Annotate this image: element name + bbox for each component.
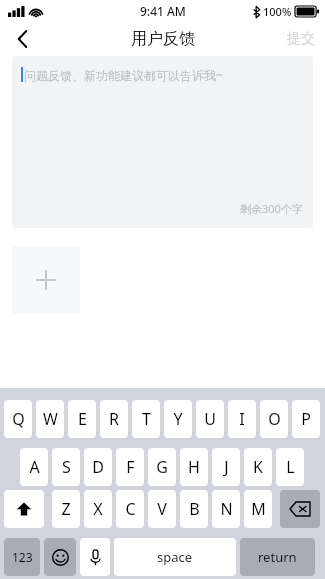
button[interactable]: L <box>276 448 304 486</box>
staticText: N <box>220 498 233 520</box>
button[interactable]: A <box>20 448 48 486</box>
button[interactable]: R <box>100 400 128 438</box>
staticText: V <box>157 498 167 520</box>
button[interactable]: N <box>212 490 240 528</box>
staticText: G <box>156 456 168 478</box>
staticText: M <box>251 498 266 520</box>
staticText: K <box>253 456 263 478</box>
button[interactable]: return <box>240 538 315 576</box>
button[interactable]: C <box>116 490 144 528</box>
staticText: W <box>43 408 58 430</box>
staticText: 100% <box>263 4 292 19</box>
staticText: J <box>224 456 229 478</box>
button[interactable]: G <box>148 448 176 486</box>
staticText: 剩余300个字 <box>240 201 303 216</box>
button[interactable]: V <box>148 490 176 528</box>
button[interactable]: T <box>132 400 160 438</box>
button[interactable]: O <box>260 400 288 438</box>
button[interactable]: F <box>116 448 144 486</box>
button[interactable]: Q <box>4 400 32 438</box>
button[interactable]: Shift <box>4 490 44 528</box>
staticText: D <box>92 456 104 478</box>
staticText: return <box>258 548 297 566</box>
button[interactable]: 提交 <box>287 30 315 48</box>
button[interactable]: Z <box>52 490 80 528</box>
staticText: 9:41 AM <box>140 3 186 19</box>
button[interactable]: E <box>68 400 96 438</box>
button[interactable]: K <box>244 448 272 486</box>
button[interactable]: M <box>244 490 272 528</box>
staticText: H <box>188 456 200 478</box>
button[interactable]: space <box>114 538 236 576</box>
staticText: F <box>126 456 135 478</box>
button[interactable]: Y <box>164 400 192 438</box>
button[interactable]: J <box>212 448 240 486</box>
button[interactable]: I <box>228 400 256 438</box>
button[interactable]: Add photo <box>12 246 80 314</box>
staticText: Q <box>12 408 25 430</box>
button[interactable]: Backspace <box>280 490 320 528</box>
button[interactable]: X <box>84 490 112 528</box>
staticText: U <box>204 408 216 430</box>
staticText: T <box>142 408 151 430</box>
staticText: 提交 <box>287 30 315 48</box>
staticText: E <box>78 408 87 430</box>
staticText: C <box>125 498 136 520</box>
staticText: Z <box>61 498 71 520</box>
staticText: X <box>93 498 103 520</box>
button[interactable]: H <box>180 448 208 486</box>
button[interactable]: Voice input <box>80 538 110 576</box>
button[interactable]: U <box>196 400 224 438</box>
staticText: 123 <box>12 549 33 565</box>
staticText: A <box>29 456 40 478</box>
staticText: L <box>286 456 295 478</box>
staticText: Y <box>173 408 183 430</box>
button[interactable]: Back <box>0 22 44 56</box>
button[interactable]: W <box>36 400 64 438</box>
staticText: I <box>239 408 245 430</box>
staticText: space <box>157 548 193 566</box>
staticText: P <box>301 408 311 430</box>
button[interactable]: 问题反馈、新功能建议都可以告诉我~ <box>12 56 313 228</box>
button[interactable]: S <box>52 448 80 486</box>
staticText: B <box>189 498 200 520</box>
staticText: R <box>109 408 119 430</box>
staticText: 用户反馈 <box>131 29 195 49</box>
button[interactable]: P <box>292 400 320 438</box>
button[interactable]: 123 <box>4 538 40 576</box>
button[interactable]: B <box>180 490 208 528</box>
staticText: O <box>268 408 281 430</box>
staticText: S <box>62 456 71 478</box>
button[interactable]: Emoji <box>44 538 76 576</box>
staticText: 问题反馈、新功能建议都可以告诉我~ <box>24 67 223 83</box>
button[interactable]: D <box>84 448 112 486</box>
